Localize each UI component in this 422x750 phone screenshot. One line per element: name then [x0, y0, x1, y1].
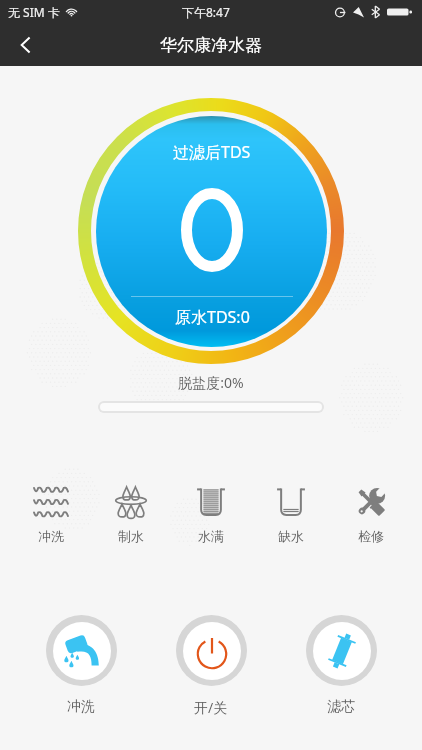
staticText: 过滤后TDS	[173, 141, 251, 163]
staticText: 脱盐度:0%	[0, 373, 422, 392]
staticText: 检修	[358, 528, 384, 544]
staticText: 缺水	[278, 528, 304, 544]
button[interactable]: 冲洗	[16, 615, 146, 716]
staticText: 滤芯	[327, 698, 355, 716]
button[interactable]: 缺水	[261, 485, 321, 544]
staticText: 无 SIM 卡	[8, 4, 60, 20]
staticText: 下午8:47	[182, 4, 230, 20]
staticText: 开/关	[194, 698, 228, 717]
button[interactable]: 检修	[341, 485, 401, 544]
button[interactable]: 滤芯	[276, 615, 406, 716]
button[interactable]: 冲洗	[21, 485, 81, 544]
staticText: 制水	[118, 528, 144, 544]
button[interactable]: Back	[6, 25, 46, 65]
button[interactable]: 开/关	[146, 615, 276, 717]
button[interactable]: 水满	[181, 485, 241, 544]
staticText: 原水TDS:0	[175, 306, 250, 328]
button[interactable]: 制水	[101, 485, 161, 544]
staticText: 冲洗	[38, 528, 64, 544]
staticText: 华尔康净水器	[160, 35, 262, 56]
staticText: 水满	[198, 528, 224, 544]
staticText: 冲洗	[67, 698, 95, 716]
